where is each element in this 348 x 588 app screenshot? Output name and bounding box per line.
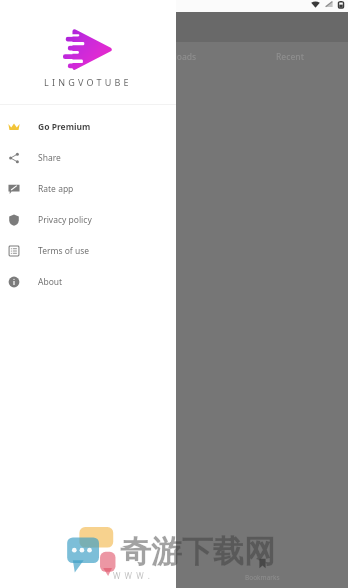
staticText: Recent <box>276 51 304 63</box>
staticText: Downloads <box>151 51 197 63</box>
button[interactable]: Library <box>0 42 116 72</box>
staticText: Library <box>44 51 73 63</box>
button[interactable]: Downloads <box>116 42 232 72</box>
staticText: Bookmarks <box>245 573 280 582</box>
staticText: LINGVOTUBE <box>44 76 132 88</box>
button[interactable]: Share <box>0 142 176 173</box>
button[interactable]: Search <box>105 548 210 588</box>
staticText: Terms of use <box>38 245 90 257</box>
button[interactable]: Privacy policy <box>0 204 176 235</box>
staticText: Rate app <box>38 183 74 195</box>
button[interactable]: Bookmarks <box>210 548 315 588</box>
button[interactable]: Go Premium <box>0 111 176 142</box>
staticText: W W W . <box>113 570 150 581</box>
button[interactable]: About <box>0 266 176 297</box>
staticText: About <box>38 276 63 288</box>
staticText: Go Premium <box>38 121 91 133</box>
staticText: Share <box>38 152 61 164</box>
button[interactable]: Terms of use <box>0 235 176 266</box>
button[interactable]: Rate app <box>0 173 176 204</box>
staticText: Privacy policy <box>38 214 92 226</box>
staticText: 奇游下载网 <box>120 532 275 571</box>
button[interactable]: Home <box>0 548 105 588</box>
